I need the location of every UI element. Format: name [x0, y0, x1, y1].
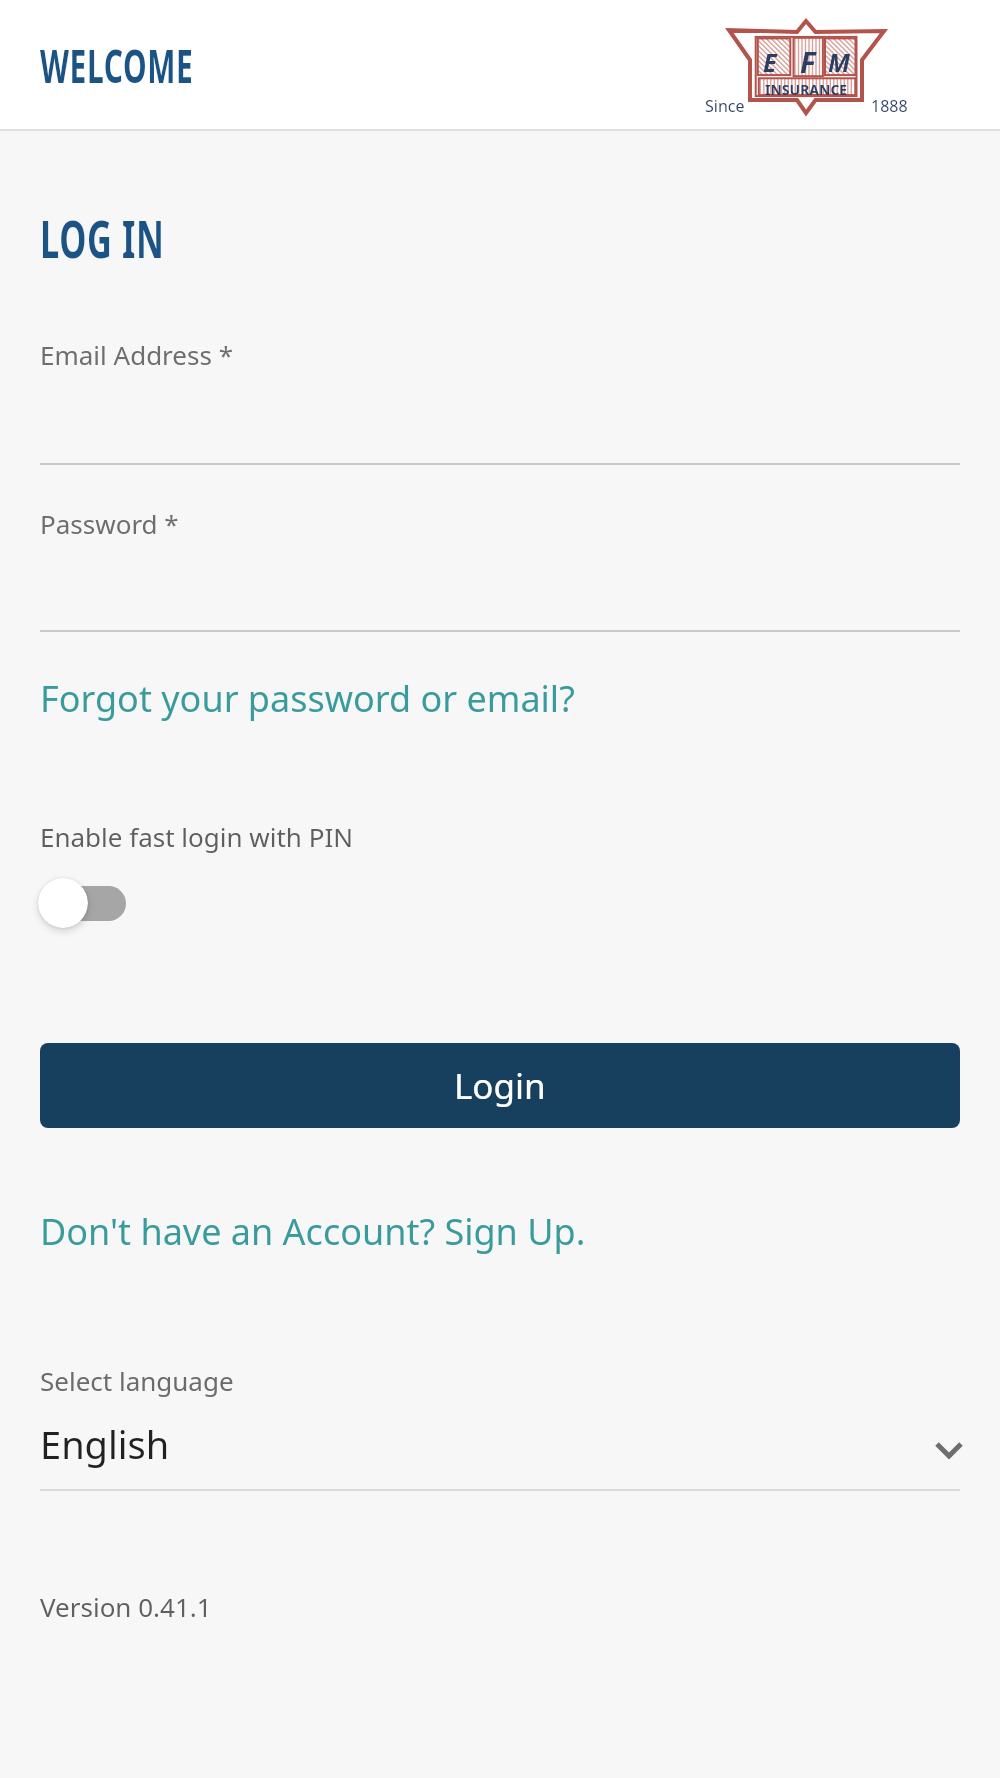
button[interactable]: Forgot your password or email? [40, 674, 575, 723]
button[interactable]: Email Address * [40, 337, 960, 463]
staticText: F [800, 42, 816, 81]
button[interactable]: English [40, 1412, 960, 1490]
staticText: Password * [40, 506, 179, 541]
button[interactable]: Don't have an Account? Sign Up. [40, 1207, 586, 1256]
button[interactable]: Login [40, 1043, 960, 1128]
staticText: M [828, 45, 851, 79]
staticText: 1888 [871, 95, 908, 117]
staticText: INSURANCE [765, 80, 848, 99]
staticText: English [40, 1418, 170, 1470]
staticText: Forgot your password or email? [40, 674, 575, 723]
staticText: Enable fast login with PIN [40, 819, 353, 854]
staticText: Since [705, 95, 745, 117]
staticText: E [763, 45, 777, 79]
staticText: Login [454, 1062, 546, 1110]
button[interactable] [38, 876, 130, 932]
staticText: Email Address * [40, 337, 233, 372]
staticText: LOG IN [40, 202, 165, 273]
staticText: Don't have an Account? Sign Up. [40, 1207, 586, 1256]
staticText: Select language [40, 1363, 234, 1398]
staticText: Version 0.41.1 [40, 1589, 212, 1624]
staticText: WELCOME [40, 34, 194, 97]
button[interactable]: Password * [40, 506, 960, 630]
